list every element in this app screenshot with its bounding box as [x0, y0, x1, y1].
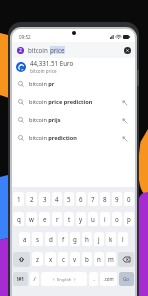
button[interactable]: Insert suggestion: [119, 133, 130, 144]
button[interactable]: Backspace: [118, 252, 134, 267]
staticText: i: [104, 215, 106, 223]
button[interactable]: .: [89, 272, 98, 286]
staticText: t: [68, 215, 71, 223]
button[interactable]: e: [39, 212, 50, 226]
button[interactable]: v: [70, 252, 80, 266]
button[interactable]: 2: [12, 42, 135, 58]
button[interactable]: Clear search: [124, 47, 131, 54]
button[interactable]: Insert suggestion: [119, 115, 130, 126]
staticText: e: [43, 215, 47, 223]
staticText: 5: [67, 195, 71, 203]
button[interactable]: Shift: [13, 252, 30, 267]
staticText: .: [93, 275, 95, 283]
staticText: .com: [103, 276, 114, 282]
button[interactable]: q: [13, 212, 24, 226]
staticText: /: [33, 275, 36, 283]
staticText: k: [109, 235, 113, 243]
staticText: q: [17, 215, 21, 223]
button[interactable]: f: [58, 232, 68, 246]
staticText: 9: [115, 195, 119, 203]
staticText: 8: [103, 195, 107, 203]
staticText: English: [57, 277, 72, 283]
button[interactable]: i: [100, 212, 110, 226]
staticText: f: [62, 235, 65, 243]
staticText: x: [49, 255, 53, 263]
button[interactable]: bitcoin prijs: [12, 111, 135, 129]
button[interactable]: 44,331.51 Euro: [12, 58, 135, 75]
staticText: w: [29, 215, 34, 223]
staticText: bitcoin: [28, 46, 50, 54]
button[interactable]: o: [112, 212, 122, 226]
button[interactable]: l: [118, 232, 128, 246]
button[interactable]: 2: [26, 192, 37, 206]
staticText: r: [56, 215, 59, 223]
staticText: z: [36, 255, 39, 263]
button[interactable]: k: [106, 232, 116, 246]
button[interactable]: s: [32, 232, 43, 246]
staticText: g: [73, 235, 77, 243]
button[interactable]: 9: [112, 192, 122, 206]
staticText: 6: [79, 195, 83, 203]
staticText: bitcoin prediction: [29, 134, 77, 142]
button[interactable]: /: [30, 272, 39, 286]
staticText: p: [127, 215, 131, 223]
button[interactable]: .com: [100, 272, 117, 286]
staticText: b: [85, 255, 89, 263]
staticText: bitcoin price: [30, 68, 57, 74]
button[interactable]: bitcoin pr: [12, 75, 135, 93]
button[interactable]: j: [94, 232, 104, 246]
button[interactable]: Go: [119, 272, 134, 286]
staticText: price: [50, 46, 65, 54]
button[interactable]: ‹: [41, 272, 87, 286]
button[interactable]: u: [88, 212, 98, 226]
button[interactable]: m: [106, 252, 116, 266]
staticText: ‹: [53, 276, 55, 283]
button[interactable]: b: [82, 252, 92, 266]
staticText: ›: [74, 276, 76, 283]
button[interactable]: y: [76, 212, 86, 226]
staticText: 09:52: [19, 34, 31, 40]
button[interactable]: 7: [88, 192, 98, 206]
button[interactable]: a: [19, 232, 30, 246]
staticText: bitcoin prijs: [29, 116, 61, 124]
button[interactable]: x: [45, 252, 56, 266]
staticText: y: [79, 215, 83, 223]
staticText: 4: [55, 195, 59, 203]
button[interactable]: g: [70, 232, 80, 246]
staticText: 3: [43, 195, 47, 203]
staticText: 7: [91, 195, 95, 203]
staticText: a: [23, 235, 27, 243]
button[interactable]: h: [82, 232, 92, 246]
staticText: Go: [123, 276, 130, 282]
staticText: h: [85, 235, 89, 243]
staticText: d: [49, 235, 53, 243]
staticText: v: [73, 255, 77, 263]
button[interactable]: t: [64, 212, 74, 226]
staticText: bitcoin pr: [29, 80, 55, 88]
button[interactable]: d: [45, 232, 56, 246]
button[interactable]: !#1: [13, 272, 28, 286]
staticText: bitcoin price prediction: [29, 98, 93, 106]
button[interactable]: bitcoin prediction: [12, 129, 135, 147]
button[interactable]: 4: [52, 192, 62, 206]
button[interactable]: 3: [39, 192, 50, 206]
staticText: o: [115, 215, 119, 223]
staticText: l: [122, 235, 124, 243]
staticText: m: [108, 255, 114, 263]
button[interactable]: 8: [100, 192, 110, 206]
staticText: c: [62, 255, 65, 263]
button[interactable]: Insert suggestion: [119, 97, 130, 108]
button[interactable]: r: [52, 212, 62, 226]
staticText: s: [36, 235, 39, 243]
button[interactable]: 1: [13, 192, 24, 206]
button[interactable]: bitcoin price prediction: [12, 93, 135, 111]
button[interactable]: 6: [76, 192, 86, 206]
button[interactable]: p: [124, 212, 134, 226]
button[interactable]: c: [58, 252, 68, 266]
button[interactable]: w: [26, 212, 37, 226]
button[interactable]: 5: [64, 192, 74, 206]
staticText: u: [91, 215, 95, 223]
button[interactable]: 0: [124, 192, 134, 206]
button[interactable]: n: [94, 252, 104, 266]
button[interactable]: z: [32, 252, 43, 266]
